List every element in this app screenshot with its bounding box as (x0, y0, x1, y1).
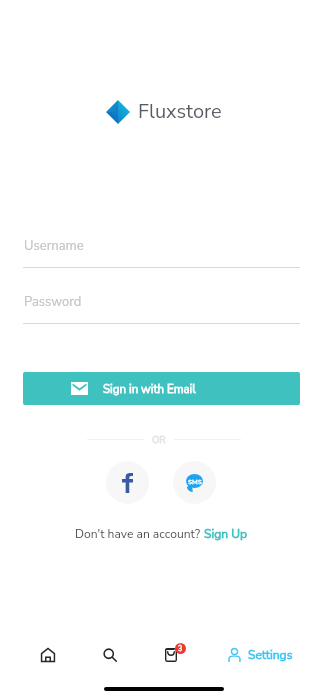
button[interactable]: Sign Up (204, 526, 248, 543)
staticText: Sign in with Email (103, 381, 196, 397)
staticText: Password (24, 293, 82, 311)
button[interactable]: Cart, 3 items (141, 640, 203, 670)
button[interactable]: Home (17, 640, 79, 670)
button[interactable]: Sign in with Email (23, 372, 300, 405)
button[interactable]: Sign in with SMS (173, 461, 216, 504)
staticText: 3 (178, 644, 183, 654)
staticText: Username (24, 237, 84, 255)
button[interactable]: Search (79, 640, 141, 670)
button[interactable]: Settings (205, 640, 316, 670)
staticText: Sign Up (204, 526, 248, 543)
staticText: SMS (188, 477, 202, 486)
button[interactable]: Sign in with Facebook (106, 461, 149, 504)
staticText: OR (152, 433, 166, 446)
staticText: Don't have an account? (75, 526, 204, 543)
staticText: Settings (248, 647, 293, 663)
staticText: Fluxstore (138, 98, 222, 125)
